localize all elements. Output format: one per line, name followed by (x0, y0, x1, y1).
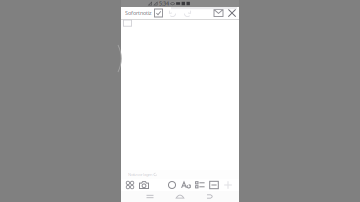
button[interactable]: Back (195, 191, 225, 201)
button[interactable]: Grid (123, 179, 137, 191)
staticText: Notizvorlagen (128, 172, 152, 177)
staticText: Sofortnotiz (125, 9, 152, 17)
button[interactable]: Redo (180, 7, 195, 19)
staticText: 5:34 (159, 0, 169, 7)
button[interactable]: Text style (179, 179, 193, 191)
button[interactable]: Undo (165, 7, 180, 19)
button[interactable]: Draw (165, 179, 179, 191)
button[interactable]: Home (165, 191, 195, 201)
button[interactable]: Camera (137, 179, 151, 191)
button[interactable]: Recents (135, 191, 165, 201)
button[interactable]: Attach (207, 179, 221, 191)
button[interactable]: Send note (212, 7, 225, 19)
button[interactable]: List (193, 179, 207, 191)
button[interactable]: Add (221, 179, 235, 191)
button[interactable]: Close (225, 7, 239, 19)
button[interactable]: Save note (152, 7, 165, 19)
